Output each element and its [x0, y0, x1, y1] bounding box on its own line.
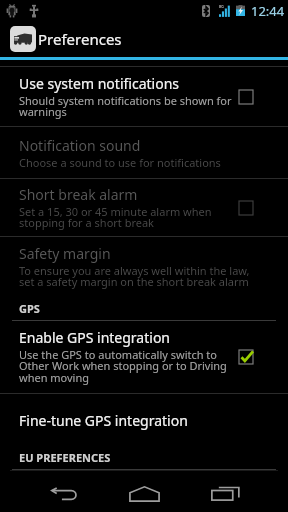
button[interactable]: Back: [24, 475, 104, 512]
staticText: Use system notifications: [19, 74, 179, 93]
button[interactable]: Use system notifications: [0, 67, 288, 126]
staticText: Set a 15, 30 or 45 minute alarm when sto…: [19, 204, 236, 231]
staticText: Fine-tune GPS integration: [19, 411, 188, 430]
other: USB connected: [29, 4, 39, 18]
staticText: Preferences: [38, 29, 122, 49]
button[interactable]: Short break alarm: [0, 179, 288, 236]
staticText: 12:44: [251, 2, 285, 20]
button[interactable]: App icon: [10, 26, 36, 52]
button[interactable]: Enable GPS integration: [0, 321, 288, 393]
button[interactable]: Home: [104, 475, 185, 512]
staticText: Short break alarm: [19, 185, 138, 204]
other: USB debugging: [7, 4, 17, 18]
staticText: GPS: [19, 301, 40, 316]
button[interactable]: Notification sound: [0, 127, 288, 178]
staticText: Choose a sound to use for notifications: [19, 155, 221, 170]
button[interactable]: Safety margin: [0, 237, 288, 297]
staticText: To ensure you are always well within the…: [19, 263, 256, 290]
staticText: EU PREFERENCES: [19, 450, 111, 465]
staticText: Should system notifications be shown for…: [19, 93, 236, 120]
button[interactable]: Recent apps: [185, 475, 266, 512]
button[interactable]: Fine-tune GPS integration: [0, 394, 288, 446]
staticText: Enable GPS integration: [19, 328, 171, 347]
staticText: Notification sound: [19, 136, 141, 155]
staticText: Use the GPS to automatically switch to O…: [19, 347, 236, 386]
staticText: Safety margin: [19, 244, 111, 263]
